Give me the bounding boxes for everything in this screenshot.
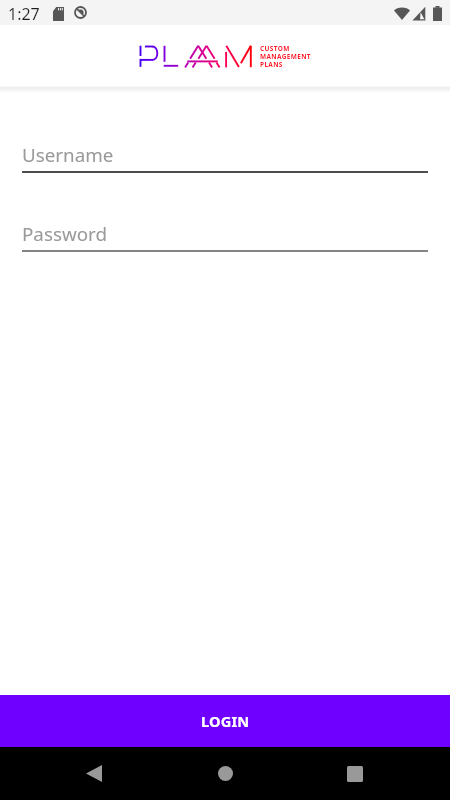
button[interactable]: Recent apps [331,747,379,800]
staticText: Username [22,142,114,168]
staticText: Password [22,221,108,247]
staticText: LOGIN [201,711,250,731]
button[interactable]: Home [201,747,249,800]
button[interactable]: LOGIN [0,695,450,747]
staticText: PLANS [260,60,283,69]
button[interactable]: Password [22,221,428,253]
button[interactable]: Back [70,747,118,800]
staticText: MANAGEMENT [260,52,311,61]
button[interactable]: Username [22,142,428,174]
staticText: CUSTOM [260,44,290,53]
staticText: 1:27 [8,3,40,25]
